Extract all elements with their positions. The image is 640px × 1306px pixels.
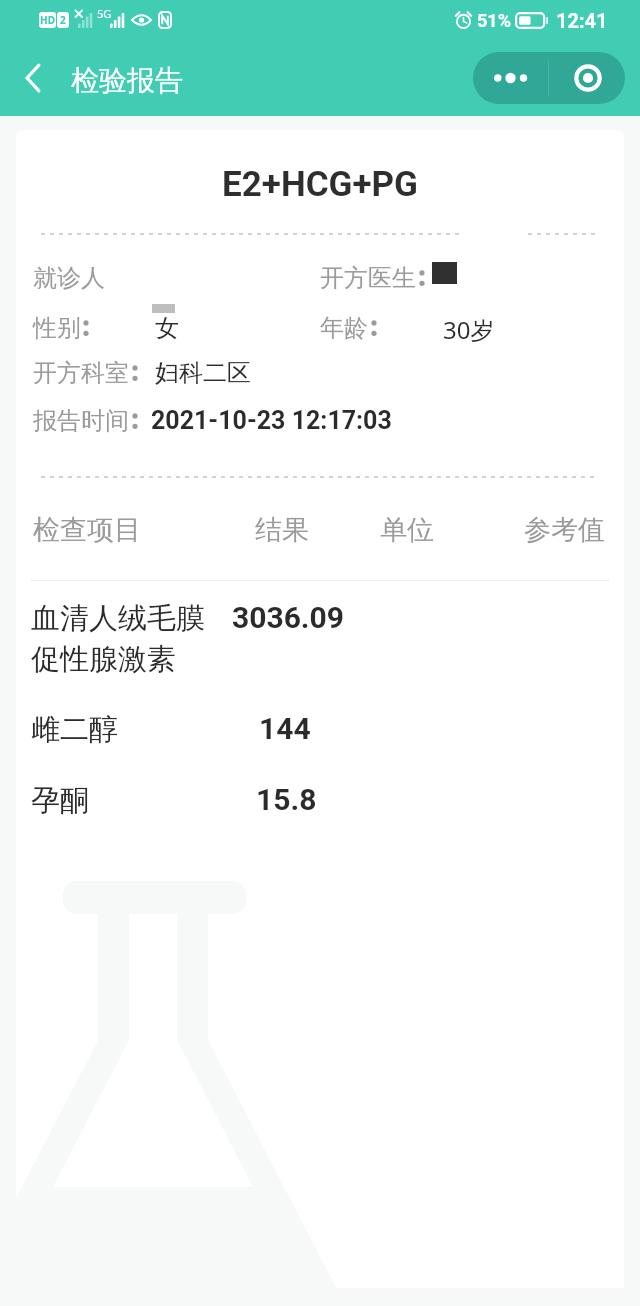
staticText: 12:41	[556, 9, 608, 32]
staticText: 开方医生	[320, 263, 416, 293]
staticText: 参考值	[524, 513, 605, 547]
staticText: 结果	[255, 513, 309, 547]
button[interactable]: More options	[473, 52, 549, 104]
staticText: 144	[259, 711, 311, 746]
staticText: 30岁	[443, 313, 495, 346]
staticText: 年龄	[320, 313, 368, 343]
staticText: 性别	[33, 313, 81, 343]
staticText: E2+HCG+PG	[16, 164, 624, 205]
staticText: 51%	[477, 10, 511, 31]
staticText: 2021-10-23 12:17:03	[151, 406, 392, 435]
staticText: 女	[155, 313, 179, 343]
staticText: HD	[40, 13, 55, 27]
staticText: 就诊人	[33, 263, 105, 293]
button[interactable]: Back	[10, 55, 56, 101]
staticText: 妇科二区	[155, 358, 251, 388]
staticText: 2	[60, 13, 66, 27]
staticText: 15.8	[256, 782, 317, 817]
staticText: 检验报告	[71, 63, 183, 98]
staticText: 雌二醇	[31, 711, 118, 748]
button[interactable]: Close mini program	[550, 52, 625, 104]
staticText: 血清人绒毛膜 促性腺激素	[31, 600, 205, 677]
staticText: 孕酮	[31, 782, 89, 819]
staticText: 检查项目	[33, 513, 141, 547]
staticText: 5G	[97, 6, 112, 21]
staticText: 报告时间	[33, 406, 129, 436]
staticText: 3036.09	[232, 600, 344, 635]
staticText: 单位	[380, 513, 434, 547]
staticText: 开方科室	[33, 358, 129, 388]
